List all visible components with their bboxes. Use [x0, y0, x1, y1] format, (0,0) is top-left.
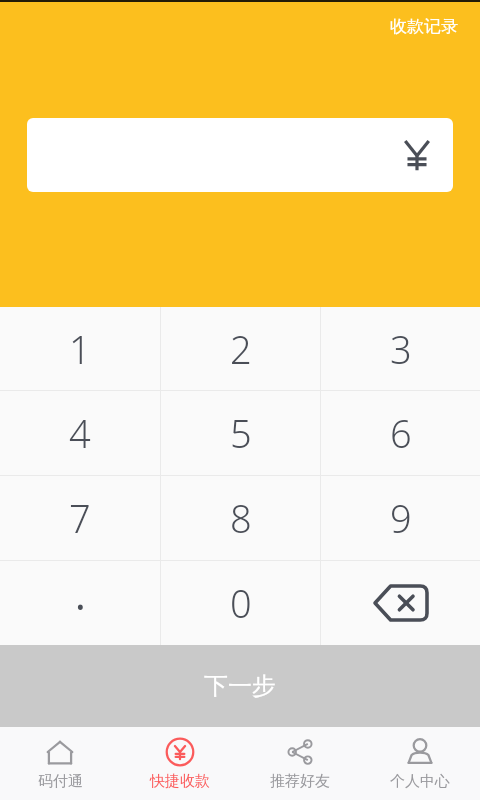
- button[interactable]: 8: [161, 476, 320, 560]
- staticText: 1: [69, 323, 91, 375]
- staticText: 推荐好友: [270, 772, 330, 791]
- other: Profile: [405, 737, 435, 767]
- button[interactable]: Quick collect: [120, 727, 240, 800]
- staticText: 快捷收款: [150, 772, 210, 791]
- other: Backspace: [375, 586, 427, 620]
- staticText: 4: [69, 407, 91, 459]
- other: Home: [45, 737, 75, 767]
- button[interactable]: 收款记录: [368, 2, 480, 51]
- staticText: 8: [230, 492, 252, 544]
- button[interactable]: 6: [321, 391, 480, 475]
- staticText: 7: [69, 492, 91, 544]
- staticText: 5: [230, 407, 252, 459]
- other: Recommend to friends: [285, 737, 315, 767]
- button[interactable]: 9: [321, 476, 480, 560]
- button[interactable]: 7: [0, 476, 160, 560]
- button[interactable]: Home: [0, 727, 120, 800]
- button[interactable]: [27, 118, 453, 192]
- button[interactable]: 3: [321, 307, 480, 390]
- button[interactable]: .: [0, 561, 160, 645]
- staticText: 下一步: [204, 671, 276, 701]
- button[interactable]: Backspace: [321, 561, 480, 645]
- button[interactable]: Recommend to friends: [240, 727, 360, 800]
- button[interactable]: 0: [161, 561, 320, 645]
- button[interactable]: 5: [161, 391, 320, 475]
- staticText: 收款记录: [390, 16, 458, 37]
- staticText: 3: [390, 323, 412, 375]
- button[interactable]: 1: [0, 307, 160, 390]
- staticText: 6: [390, 407, 412, 459]
- staticText: .: [75, 567, 86, 621]
- staticText: 码付通: [38, 772, 83, 791]
- staticText: 个人中心: [390, 772, 450, 791]
- staticText: 2: [230, 323, 252, 375]
- staticText: 0: [230, 577, 252, 629]
- other: Quick collect: [165, 737, 195, 767]
- button[interactable]: 2: [161, 307, 320, 390]
- button[interactable]: 4: [0, 391, 160, 475]
- staticText: 9: [390, 492, 412, 544]
- button[interactable]: Profile: [360, 727, 480, 800]
- button[interactable]: 下一步: [0, 645, 480, 727]
